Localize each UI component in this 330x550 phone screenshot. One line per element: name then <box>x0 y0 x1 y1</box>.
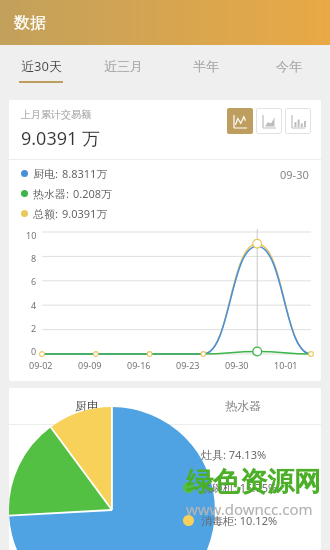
staticText: 热水器: <box>33 186 69 201</box>
staticText: 09-30 <box>225 359 249 371</box>
staticText: 4 <box>31 299 37 311</box>
staticText: 9.0391万 <box>62 206 108 221</box>
staticText: 上月累计交易额 <box>21 108 91 121</box>
staticText: 半年 <box>193 58 219 74</box>
button[interactable]: 半年 <box>164 45 247 95</box>
staticText: 洗碗机: 15.75% <box>201 480 278 495</box>
staticText: 灶具: 74.13% <box>201 447 267 462</box>
staticText: 8 <box>31 252 37 264</box>
staticText: 09-09 <box>78 359 102 371</box>
staticText: 09-23 <box>176 359 200 371</box>
staticText: 2 <box>31 322 37 334</box>
staticText: 近30天 <box>21 57 62 75</box>
button[interactable]: 厨电 <box>9 388 165 424</box>
staticText: 0.208万 <box>73 186 113 201</box>
staticText: 数据 <box>14 13 46 33</box>
staticText: 今年 <box>276 58 302 74</box>
staticText: 9.0391 万 <box>21 126 100 151</box>
button[interactable]: Line chart <box>227 108 253 134</box>
staticText: 10-01 <box>274 359 298 371</box>
button[interactable]: 热水器 <box>165 388 321 424</box>
staticText: 09-16 <box>127 359 151 371</box>
staticText: 6 <box>31 275 37 287</box>
button[interactable]: Area chart <box>256 108 282 134</box>
staticText: 总额: <box>33 206 58 221</box>
button[interactable]: 近30天 <box>0 45 82 95</box>
staticText: 09-30 <box>280 167 309 182</box>
staticText: 热水器 <box>225 398 261 413</box>
staticText: www.downcc.com <box>186 499 313 519</box>
staticText: 近三月 <box>104 58 143 74</box>
staticText: 10 <box>26 229 37 241</box>
staticText: 0 <box>31 345 37 357</box>
button[interactable]: Bar chart <box>285 108 311 134</box>
staticText: 09-02 <box>29 359 53 371</box>
staticText: 消毒柜: 10.12% <box>201 513 278 528</box>
button[interactable]: 今年 <box>247 45 330 95</box>
staticText: 绿色资源网 <box>186 465 321 499</box>
staticText: 8.8311万 <box>62 166 108 181</box>
staticText: 厨电: <box>33 166 58 181</box>
staticText: 厨电 <box>75 398 99 413</box>
button[interactable]: 近三月 <box>82 45 164 95</box>
